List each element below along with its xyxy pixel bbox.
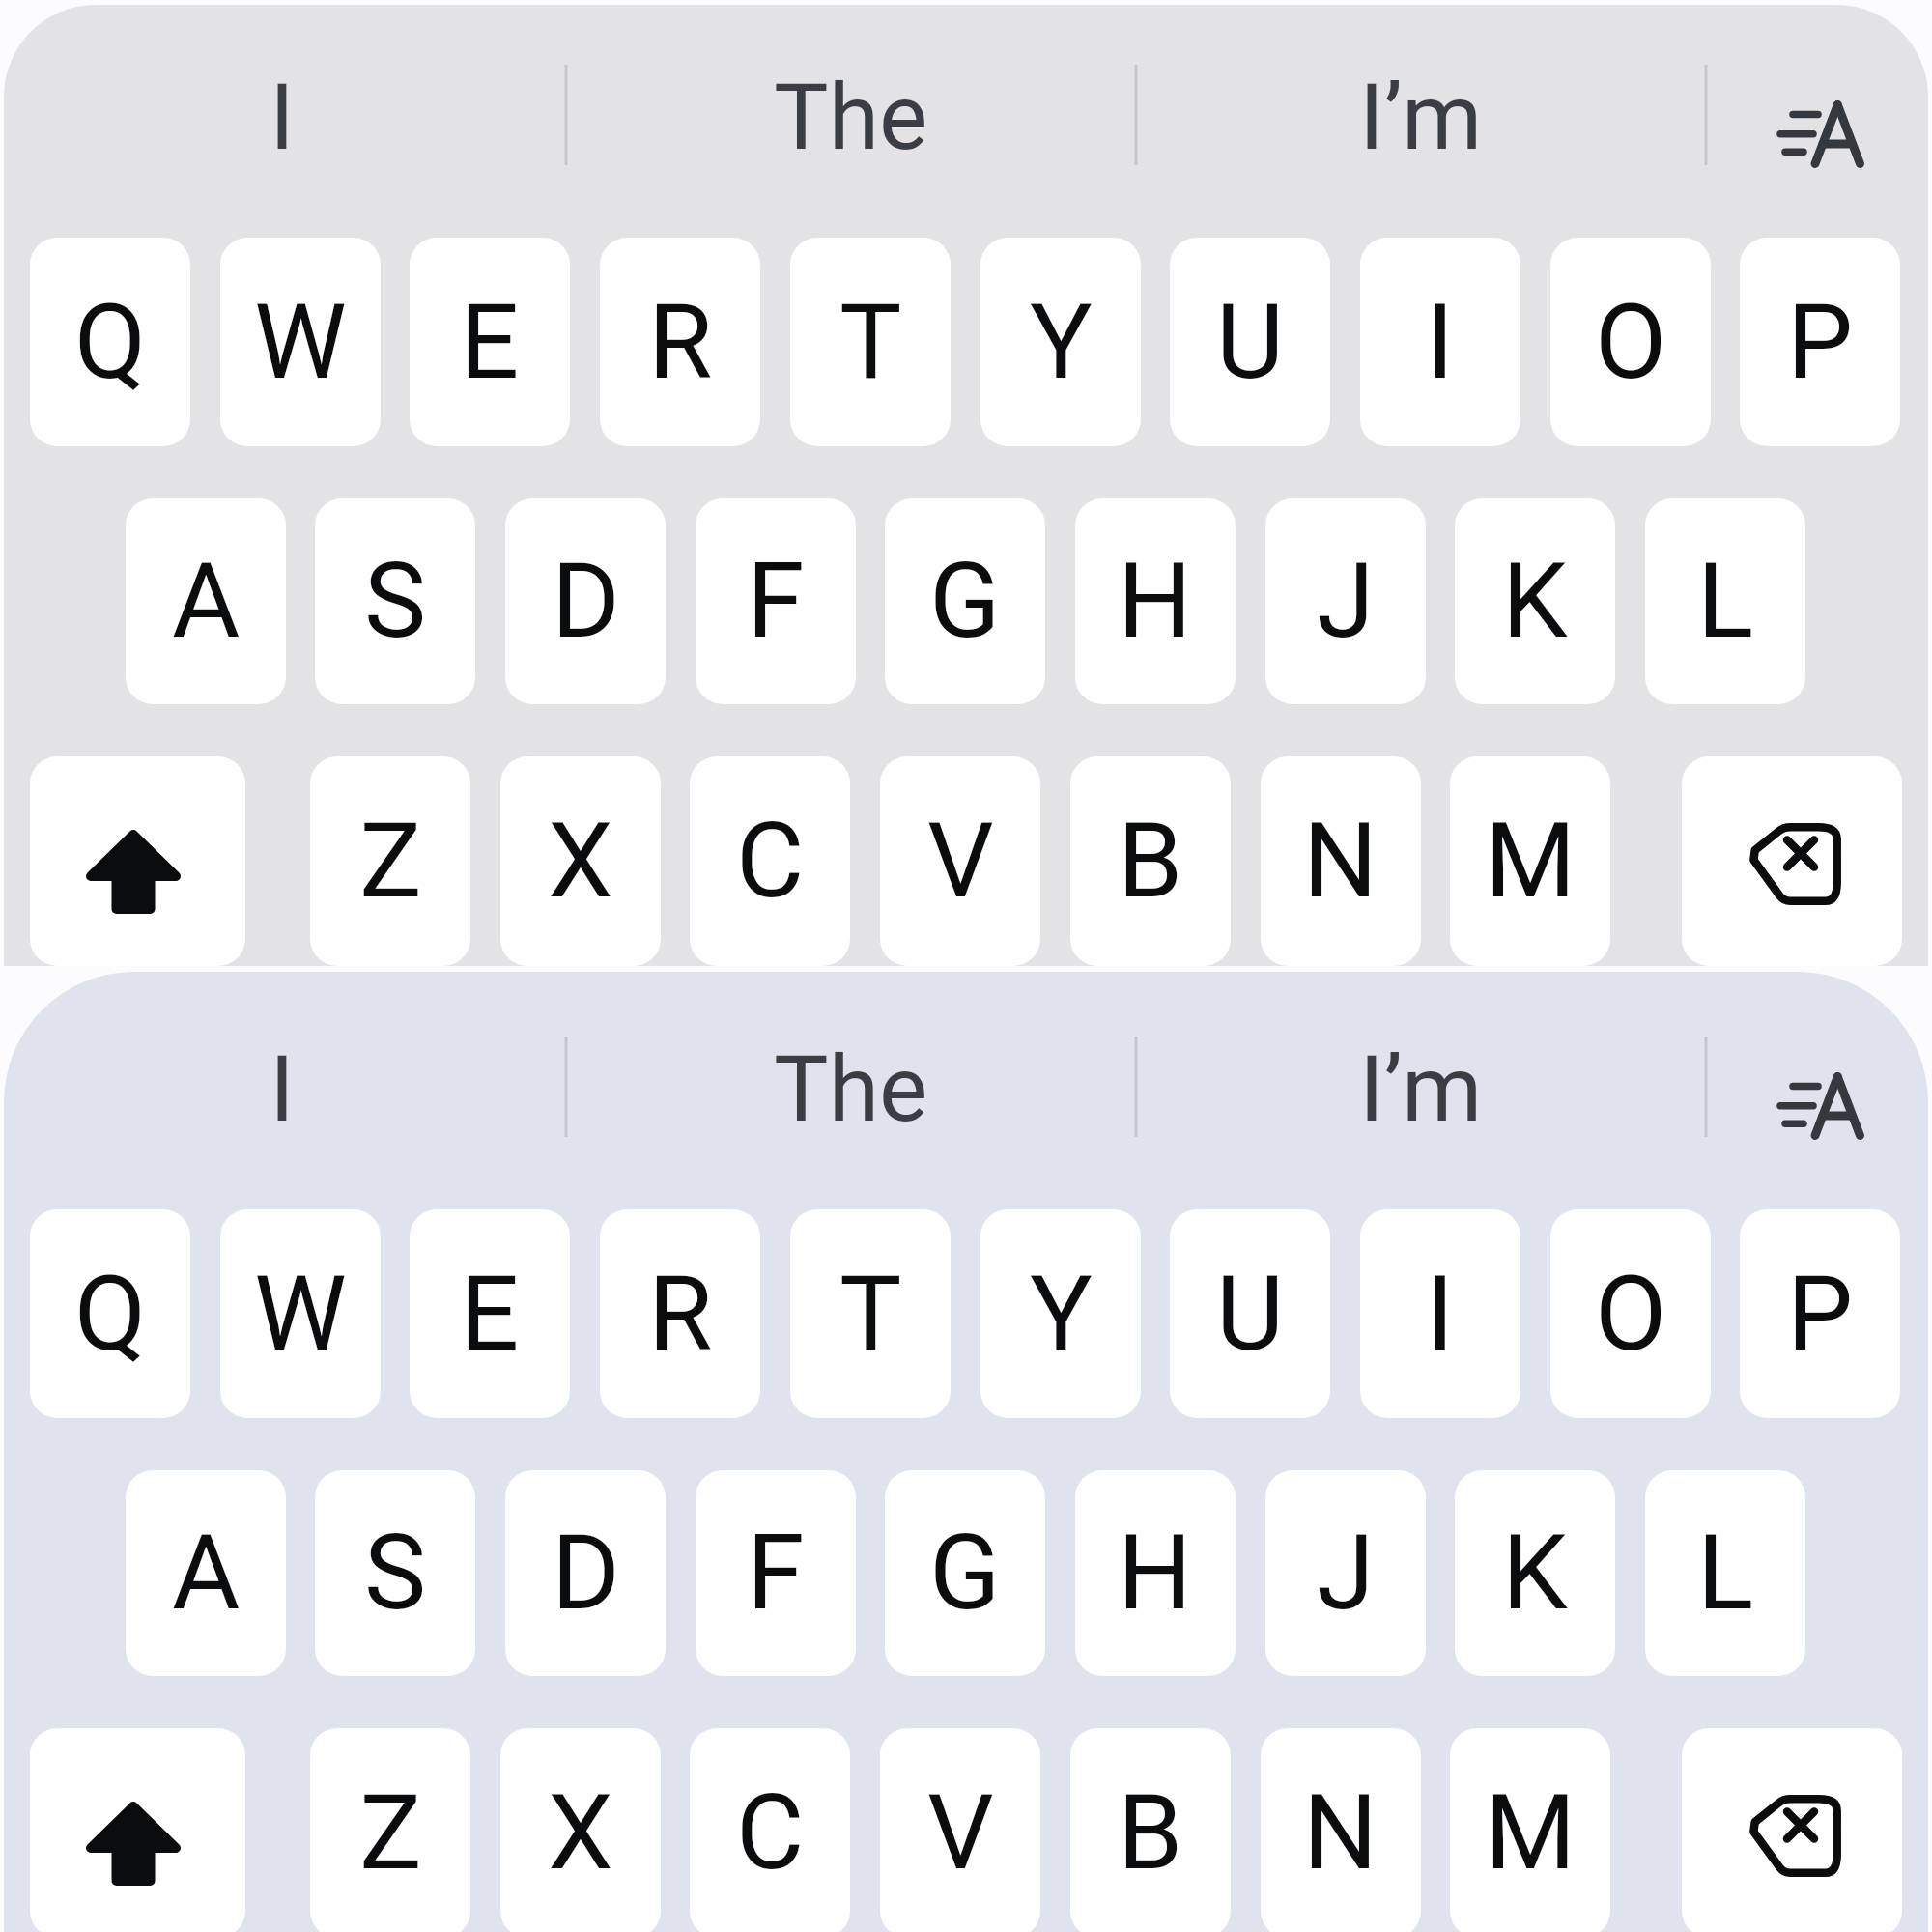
button[interactable]: J: [1265, 1470, 1426, 1676]
button[interactable]: I’m: [1137, 49, 1704, 185]
staticText: O: [1595, 1253, 1667, 1376]
staticText: The: [774, 1036, 928, 1143]
staticText: X: [548, 800, 613, 923]
staticText: T: [839, 1253, 902, 1376]
staticText: L: [1697, 540, 1754, 663]
button[interactable]: F: [696, 1470, 856, 1676]
button[interactable]: I: [0, 1021, 564, 1156]
button[interactable]: L: [1645, 1470, 1805, 1676]
staticText: D: [552, 1512, 620, 1634]
button[interactable]: The: [567, 1021, 1134, 1156]
button[interactable]: N: [1261, 1728, 1421, 1932]
button[interactable]: I: [0, 49, 564, 185]
button[interactable]: V: [880, 756, 1040, 966]
button[interactable]: The: [567, 49, 1134, 185]
button[interactable]: G: [885, 1470, 1045, 1676]
staticText: S: [364, 540, 427, 663]
button[interactable]: C: [690, 756, 850, 966]
button[interactable]: F: [696, 498, 856, 704]
button[interactable]: K: [1455, 1470, 1615, 1676]
staticText: B: [1118, 800, 1183, 923]
staticText: V: [927, 800, 994, 923]
staticText: P: [1787, 281, 1854, 404]
button[interactable]: H: [1075, 498, 1236, 704]
button[interactable]: M: [1450, 756, 1610, 966]
button[interactable]: W: [220, 1209, 381, 1418]
staticText: N: [1303, 1772, 1378, 1894]
staticText: U: [1216, 1253, 1285, 1376]
button[interactable]: [1682, 1728, 1902, 1932]
button[interactable]: B: [1070, 1728, 1231, 1932]
staticText: I: [1426, 281, 1455, 404]
button[interactable]: Z: [310, 1728, 470, 1932]
staticText: Y: [1030, 1253, 1093, 1376]
staticText: The: [774, 64, 928, 171]
button[interactable]: O: [1550, 238, 1711, 446]
staticText: L: [1697, 1512, 1754, 1634]
button[interactable]: I’m: [1137, 1021, 1704, 1156]
staticText: N: [1303, 800, 1378, 923]
button[interactable]: [1682, 756, 1902, 966]
button[interactable]: O: [1550, 1209, 1711, 1418]
button[interactable]: T: [790, 1209, 951, 1418]
button[interactable]: X: [500, 756, 661, 966]
button[interactable]: I: [1360, 1209, 1520, 1418]
button[interactable]: G: [885, 498, 1045, 704]
button[interactable]: [1707, 49, 1932, 185]
button[interactable]: R: [600, 1209, 760, 1418]
button[interactable]: P: [1740, 238, 1900, 446]
staticText: C: [736, 1772, 805, 1894]
button[interactable]: U: [1170, 238, 1330, 446]
button[interactable]: Y: [980, 238, 1141, 446]
staticText: F: [747, 1512, 805, 1634]
staticText: I’m: [1359, 1036, 1483, 1143]
staticText: A: [172, 1512, 241, 1634]
button[interactable]: I: [1360, 238, 1520, 446]
staticText: M: [1485, 1772, 1577, 1894]
button[interactable]: L: [1645, 498, 1805, 704]
staticText: Z: [359, 800, 422, 923]
button[interactable]: Q: [30, 1209, 190, 1418]
button[interactable]: U: [1170, 1209, 1330, 1418]
button[interactable]: V: [880, 1728, 1040, 1932]
button[interactable]: T: [790, 238, 951, 446]
button[interactable]: E: [410, 238, 570, 446]
staticText: S: [364, 1512, 427, 1634]
button[interactable]: [1707, 1021, 1932, 1156]
button[interactable]: X: [500, 1728, 661, 1932]
button[interactable]: Q: [30, 238, 190, 446]
button[interactable]: S: [315, 498, 475, 704]
button[interactable]: E: [410, 1209, 570, 1418]
button[interactable]: S: [315, 1470, 475, 1676]
staticText: Y: [1030, 281, 1093, 404]
staticText: P: [1787, 1253, 1854, 1376]
button[interactable]: D: [505, 498, 666, 704]
staticText: W: [254, 1253, 347, 1376]
staticText: Q: [74, 1253, 147, 1376]
button[interactable]: [30, 756, 245, 966]
button[interactable]: R: [600, 238, 760, 446]
button[interactable]: Z: [310, 756, 470, 966]
staticText: J: [1317, 1512, 1375, 1634]
button[interactable]: M: [1450, 1728, 1610, 1932]
button[interactable]: P: [1740, 1209, 1900, 1418]
button[interactable]: B: [1070, 756, 1231, 966]
button[interactable]: W: [220, 238, 381, 446]
button[interactable]: J: [1265, 498, 1426, 704]
staticText: E: [460, 281, 520, 404]
button[interactable]: H: [1075, 1470, 1236, 1676]
staticText: W: [254, 281, 347, 404]
button[interactable]: K: [1455, 498, 1615, 704]
button[interactable]: C: [690, 1728, 850, 1932]
staticText: K: [1502, 540, 1568, 663]
staticText: E: [460, 1253, 520, 1376]
staticText: X: [548, 1772, 613, 1894]
button[interactable]: A: [126, 498, 286, 704]
staticText: Z: [359, 1772, 422, 1894]
button[interactable]: Y: [980, 1209, 1141, 1418]
button[interactable]: D: [505, 1470, 666, 1676]
button[interactable]: A: [126, 1470, 286, 1676]
button[interactable]: N: [1261, 756, 1421, 966]
staticText: H: [1118, 1512, 1193, 1634]
button[interactable]: [30, 1728, 245, 1932]
